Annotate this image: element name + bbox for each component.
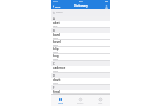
staticText: noun bbox=[53, 82, 59, 85]
staticText: noun bbox=[53, 37, 59, 40]
staticText: Recents bbox=[77, 102, 84, 104]
staticText: blip bbox=[53, 47, 59, 51]
button[interactable]: Add bbox=[105, 5, 108, 8]
staticText: feral bbox=[53, 90, 60, 94]
button[interactable]: bevel bbox=[51, 40, 110, 47]
staticText: verb bbox=[53, 25, 58, 28]
button[interactable]: davit bbox=[51, 78, 110, 85]
button[interactable]: bard bbox=[51, 33, 110, 40]
button[interactable]: abet bbox=[51, 21, 110, 28]
staticText: noun bbox=[53, 58, 59, 61]
staticText: C bbox=[53, 62, 55, 66]
staticText: noun bbox=[53, 44, 59, 47]
button[interactable]: blip bbox=[51, 47, 110, 54]
staticText: A bbox=[53, 17, 55, 21]
button[interactable]: Back bbox=[51, 3, 61, 9]
staticText: Dictionary bbox=[74, 4, 88, 8]
staticText: noun bbox=[53, 70, 59, 73]
staticText: noun bbox=[53, 51, 59, 54]
button[interactable]: More bbox=[90, 95, 110, 106]
staticText: bard bbox=[53, 33, 60, 37]
button[interactable]: bog bbox=[51, 54, 110, 61]
staticText: B bbox=[53, 29, 55, 33]
staticText: F bbox=[53, 86, 55, 90]
staticText: 9:41 bbox=[79, 0, 83, 3]
button[interactable]: feral bbox=[51, 90, 110, 94]
staticText: Words bbox=[58, 102, 64, 104]
staticText: Back bbox=[55, 5, 61, 8]
staticText: D bbox=[53, 74, 56, 78]
staticText: bevel bbox=[53, 40, 62, 44]
button[interactable]: Search bbox=[51, 9, 110, 16]
staticText: bog bbox=[53, 54, 59, 58]
button[interactable]: Words bbox=[51, 95, 70, 106]
staticText: davit bbox=[53, 78, 61, 82]
staticText: More bbox=[98, 102, 103, 104]
staticText: cadence bbox=[53, 66, 66, 70]
staticText: Search bbox=[56, 11, 63, 14]
staticText: abet bbox=[53, 21, 60, 25]
button[interactable]: Recents bbox=[70, 95, 90, 106]
button[interactable]: cadence bbox=[51, 66, 110, 73]
